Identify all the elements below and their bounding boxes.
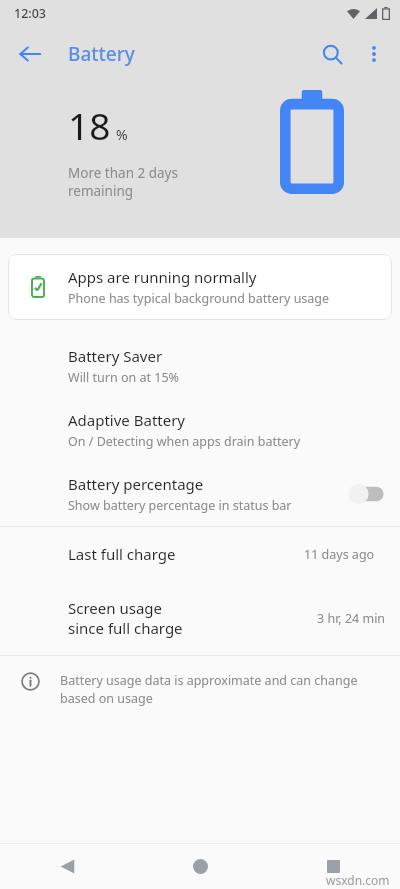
staticText: Last full charge xyxy=(68,544,176,564)
staticText: Apps are running normally xyxy=(68,267,257,287)
staticText: 11 days ago xyxy=(304,546,375,563)
staticText: Battery xyxy=(68,41,135,67)
button[interactable]: Recent apps xyxy=(267,844,400,889)
staticText: 12:03 xyxy=(14,5,47,22)
staticText: Adaptive Battery xyxy=(68,410,186,430)
button[interactable]: Search xyxy=(310,32,354,76)
staticText: % xyxy=(116,125,128,144)
staticText: Phone has typical background battery usa… xyxy=(68,290,330,307)
button[interactable]: Battery percentage toggle xyxy=(344,480,388,508)
staticText: Battery usage data is approximate and ca… xyxy=(60,672,386,707)
button[interactable]: Adaptive Battery xyxy=(0,398,400,462)
button[interactable]: Back xyxy=(0,844,134,889)
staticText: Will turn on at 15% xyxy=(68,369,179,386)
staticText: Battery Saver xyxy=(68,346,163,366)
button[interactable]: Battery percentage xyxy=(0,462,400,526)
button[interactable]: Apps are running normally xyxy=(8,254,392,320)
staticText: Screen usage since full charge xyxy=(68,598,188,638)
staticText: Battery percentage xyxy=(68,474,204,494)
staticText: 3 hr, 24 min xyxy=(317,610,386,627)
staticText: Show battery percentage in status bar xyxy=(68,497,292,514)
button[interactable]: Back xyxy=(8,32,52,76)
staticText: wsxdn.com xyxy=(326,872,390,888)
button[interactable]: Screen usage since full charge xyxy=(0,581,400,655)
button[interactable]: Home xyxy=(134,844,267,889)
staticText: 18 xyxy=(68,100,111,150)
button[interactable]: Last full charge xyxy=(0,527,400,581)
button[interactable]: Battery Saver xyxy=(0,334,400,398)
button[interactable]: More options xyxy=(354,34,394,74)
staticText: On / Detecting when apps drain battery xyxy=(68,433,301,450)
staticText: More than 2 days remaining xyxy=(68,164,178,200)
